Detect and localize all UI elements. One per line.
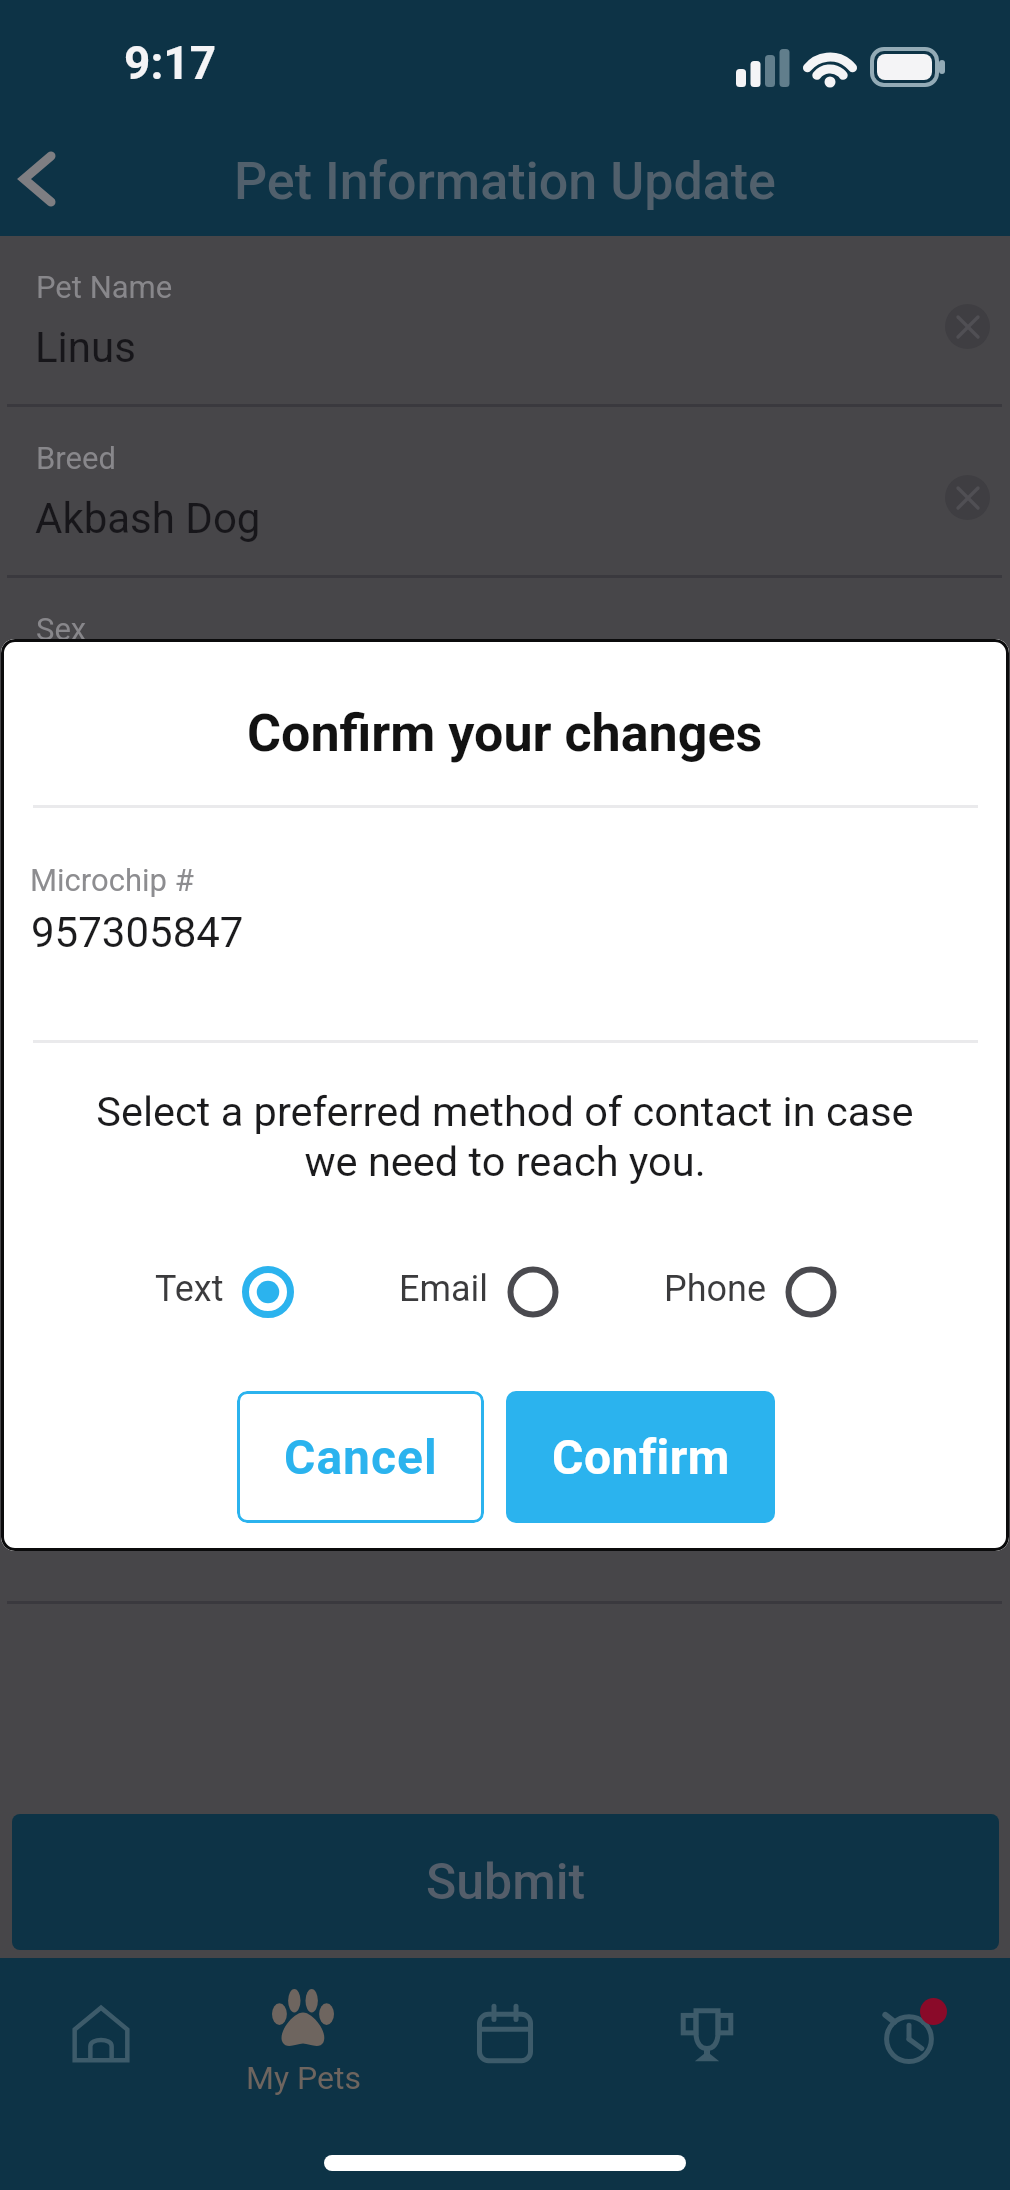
button[interactable]: My Pets [202,1958,404,2110]
button[interactable]: Reminders [808,1958,1010,2110]
staticText: Linus [35,323,136,372]
staticText: Cancel [284,1429,438,1485]
staticText: Submit [426,1853,586,1912]
button[interactable]: Cancel [237,1391,484,1523]
button[interactable]: Clear Breed [945,475,990,520]
button[interactable]: Back [0,126,96,236]
button[interactable]: Calendar [404,1958,606,2110]
button[interactable]: Submit [12,1814,999,1950]
staticText: 9:17 [124,36,217,90]
button[interactable]: Clear Pet Name [945,304,990,349]
staticText: Akbash Dog [35,494,261,543]
button[interactable]: Phone [664,1266,837,1318]
staticText: 957305847 [31,908,244,957]
button[interactable]: Email [399,1266,559,1318]
staticText: Confirm your changes [247,703,763,764]
staticText: Microchip # [30,862,194,898]
staticText: My Pets [246,2059,361,2097]
staticText: Phone [664,1268,767,1310]
button[interactable]: Text [155,1266,294,1318]
button[interactable]: Awards [606,1958,808,2110]
staticText: Breed [36,440,116,476]
staticText: Pet Name [36,269,173,305]
staticText: Confirm [552,1429,730,1485]
button[interactable]: Home [0,1958,202,2110]
staticText: Text [155,1268,224,1310]
button[interactable]: Confirm [506,1391,775,1523]
staticText: Email [399,1268,489,1310]
staticText: Sex [36,611,87,647]
staticText: Select a preferred method of contact in … [90,1087,920,1186]
staticText: Pet Information Update [234,151,776,212]
